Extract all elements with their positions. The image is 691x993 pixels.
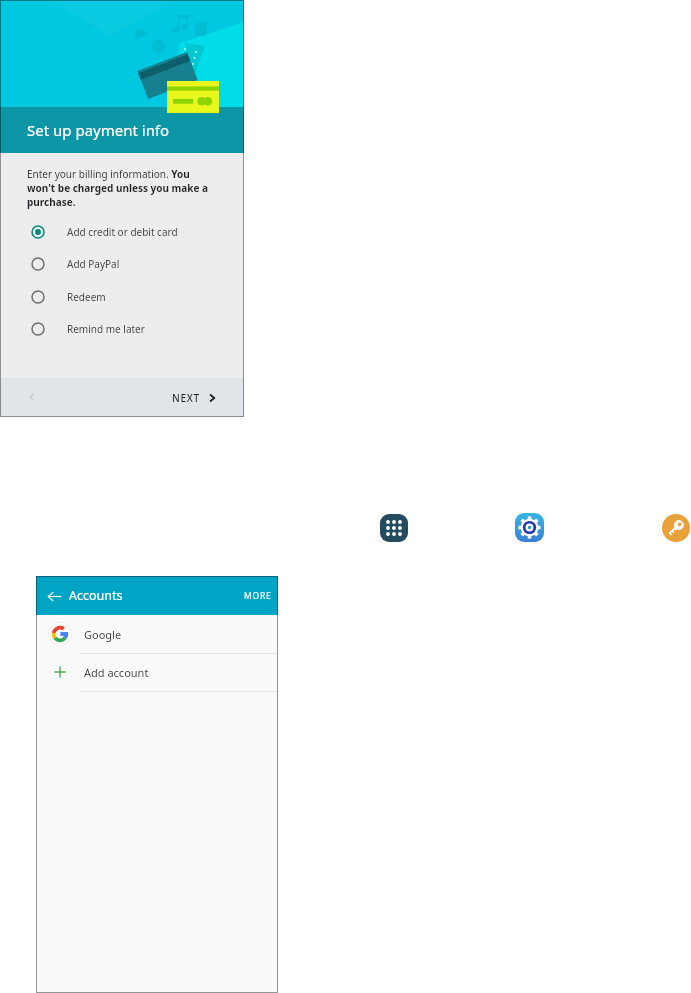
button[interactable]: Redeem <box>0 281 244 313</box>
staticText: Enter your billing information. You won'… <box>27 167 213 209</box>
button[interactable]: Key <box>662 514 690 542</box>
button[interactable]: NEXT <box>169 385 219 411</box>
button[interactable]: Apps <box>380 514 408 542</box>
staticText: Remind me later <box>67 322 145 336</box>
button[interactable]: Add PayPal <box>0 248 244 280</box>
staticText: Add PayPal <box>67 257 120 271</box>
button[interactable]: Google <box>36 615 278 653</box>
button[interactable]: Add account <box>36 653 278 691</box>
staticText: Add account <box>84 665 149 680</box>
staticText: Redeem <box>67 290 106 304</box>
button[interactable]: Back <box>24 389 40 405</box>
button[interactable]: Settings <box>515 513 544 542</box>
button[interactable]: MORE <box>241 587 275 605</box>
button[interactable]: Add credit or debit card <box>0 216 244 248</box>
staticText: MORE <box>244 590 272 602</box>
staticText: NEXT <box>172 391 200 405</box>
staticText: Google <box>84 627 122 642</box>
button[interactable]: Remind me later <box>0 313 244 345</box>
button[interactable]: Back <box>43 585 65 607</box>
staticText: Add credit or debit card <box>67 225 178 239</box>
staticText: Set up payment info <box>27 120 170 140</box>
staticText: Accounts <box>69 587 123 604</box>
